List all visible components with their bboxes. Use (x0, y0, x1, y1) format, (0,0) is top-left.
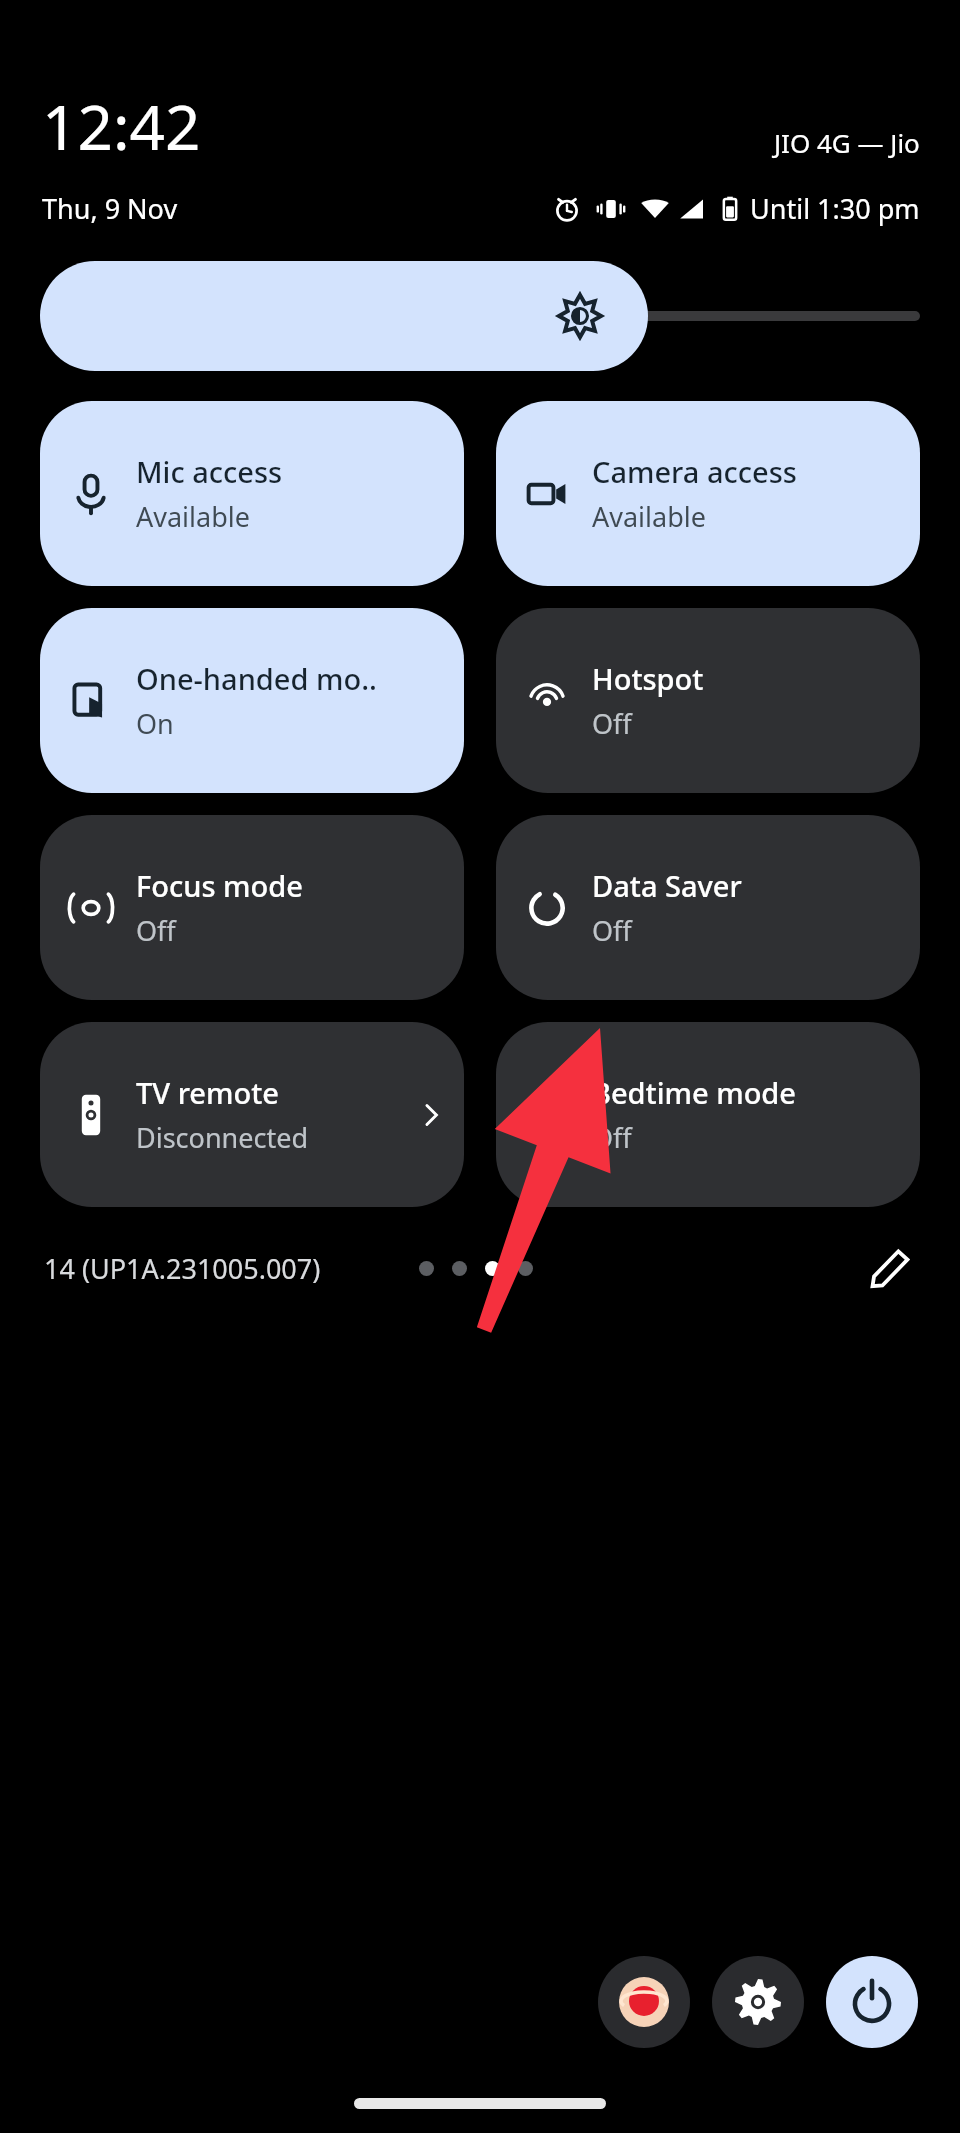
staticText: Until 1:30 pm (750, 190, 920, 227)
staticText: Off (592, 1119, 632, 1156)
staticText: Disconnected (136, 1119, 309, 1156)
staticText: 14 (UP1A.231005.007) (44, 1250, 321, 1287)
staticText: Off (592, 912, 632, 949)
staticText: Hotspot (592, 659, 704, 698)
staticText: Focus mode (136, 866, 303, 905)
button[interactable]: One-handed mo.. (40, 608, 464, 793)
button[interactable]: Data Saver (496, 815, 920, 1000)
button[interactable]: Focus mode (40, 815, 464, 1000)
button[interactable]: Settings (712, 1956, 804, 2048)
staticText: Available (592, 498, 706, 535)
button[interactable]: Brightness (40, 261, 920, 371)
staticText: 12:42 (42, 84, 201, 168)
button[interactable]: Camera access (496, 401, 920, 586)
button[interactable]: Mic access (40, 401, 464, 586)
staticText: Mic access (136, 452, 283, 491)
button[interactable]: Hotspot (496, 608, 920, 793)
button[interactable]: Edit tiles (852, 1233, 928, 1303)
staticText: On (136, 705, 174, 742)
staticText: Bedtime mode (592, 1073, 796, 1112)
button[interactable]: Bedtime mode (496, 1022, 920, 1207)
staticText: Data Saver (592, 866, 742, 905)
staticText: One-handed mo.. (136, 659, 377, 698)
staticText: Thu, 9 Nov (42, 190, 178, 227)
button[interactable]: TV remote (40, 1022, 464, 1207)
staticText: JIO 4G — Jio (774, 125, 920, 160)
staticText: Camera access (592, 452, 797, 491)
button[interactable]: User (598, 1956, 690, 2048)
staticText: Off (592, 705, 632, 742)
button[interactable]: Power (826, 1956, 918, 2048)
staticText: TV remote (136, 1073, 279, 1112)
staticText: Available (136, 498, 250, 535)
staticText: Off (136, 912, 176, 949)
